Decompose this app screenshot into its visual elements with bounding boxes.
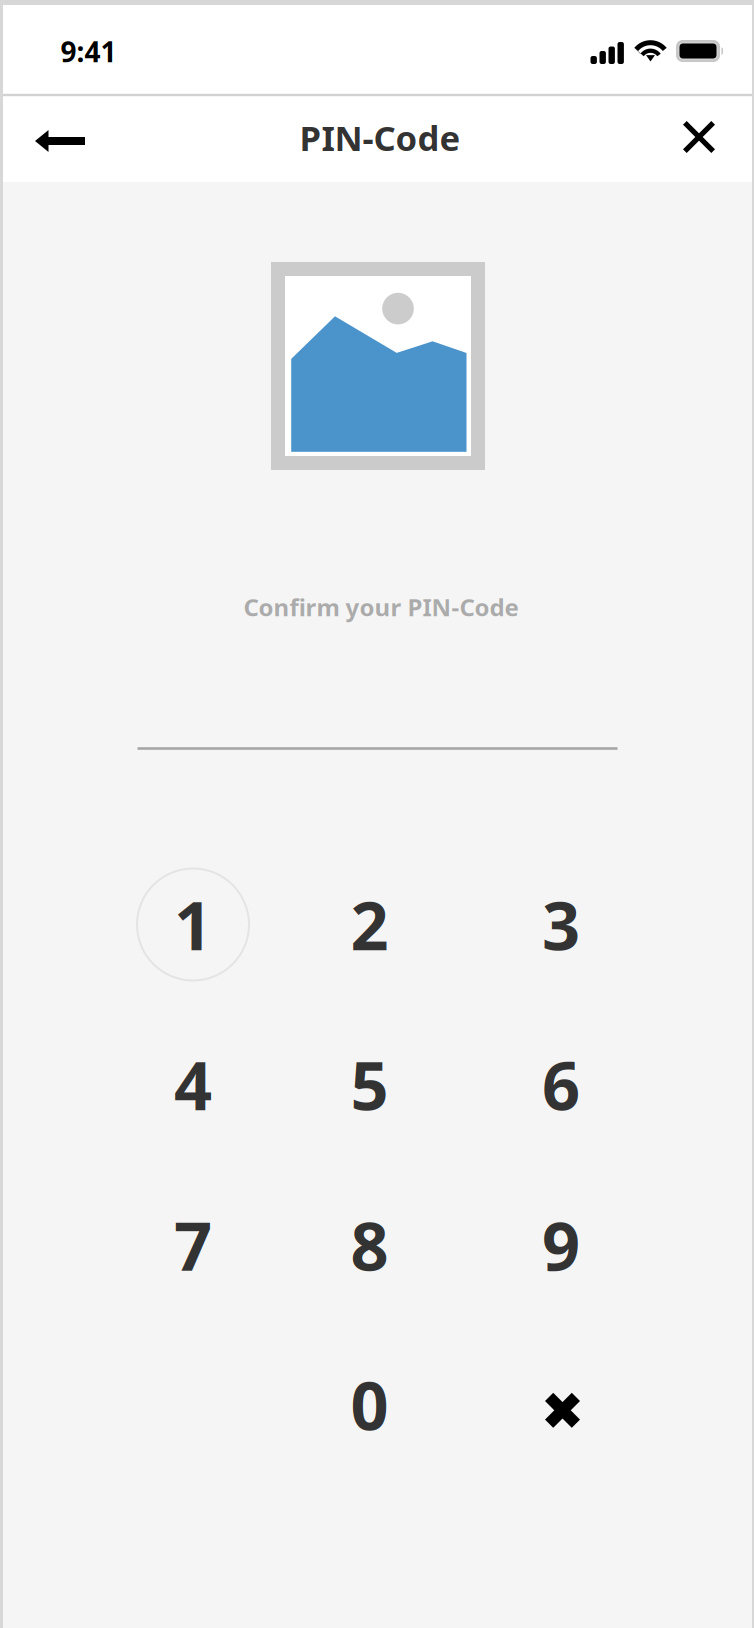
- button[interactable]: Back: [16, 93, 104, 182]
- staticText: 6: [542, 1040, 580, 1129]
- staticText: PIN-Code: [299, 114, 460, 160]
- button[interactable]: 9: [491, 1175, 631, 1315]
- staticText: 8: [350, 1201, 388, 1289]
- button[interactable]: 8: [299, 1175, 439, 1315]
- staticText: 7: [174, 1201, 212, 1289]
- staticText: 3: [542, 880, 580, 969]
- button[interactable]: 3: [491, 854, 631, 994]
- staticText: 4: [174, 1040, 212, 1129]
- button[interactable]: 5: [299, 1014, 439, 1154]
- staticText: 9: [542, 1201, 580, 1289]
- staticText: 1: [174, 880, 212, 969]
- button[interactable]: Close: [656, 93, 742, 182]
- button[interactable]: 4: [123, 1014, 263, 1154]
- button[interactable]: 1: [123, 854, 263, 994]
- button[interactable]: 7: [123, 1175, 263, 1315]
- staticText: 5: [350, 1040, 388, 1129]
- button[interactable]: 2: [299, 854, 439, 994]
- button[interactable]: Delete: [491, 1334, 631, 1474]
- button[interactable]: 0: [299, 1334, 439, 1474]
- staticText: 2: [350, 880, 388, 969]
- staticText: 9:41: [60, 33, 116, 70]
- button[interactable]: 6: [491, 1014, 631, 1154]
- staticText: 0: [350, 1360, 388, 1449]
- staticText: Confirm your PIN-Code: [243, 591, 518, 623]
